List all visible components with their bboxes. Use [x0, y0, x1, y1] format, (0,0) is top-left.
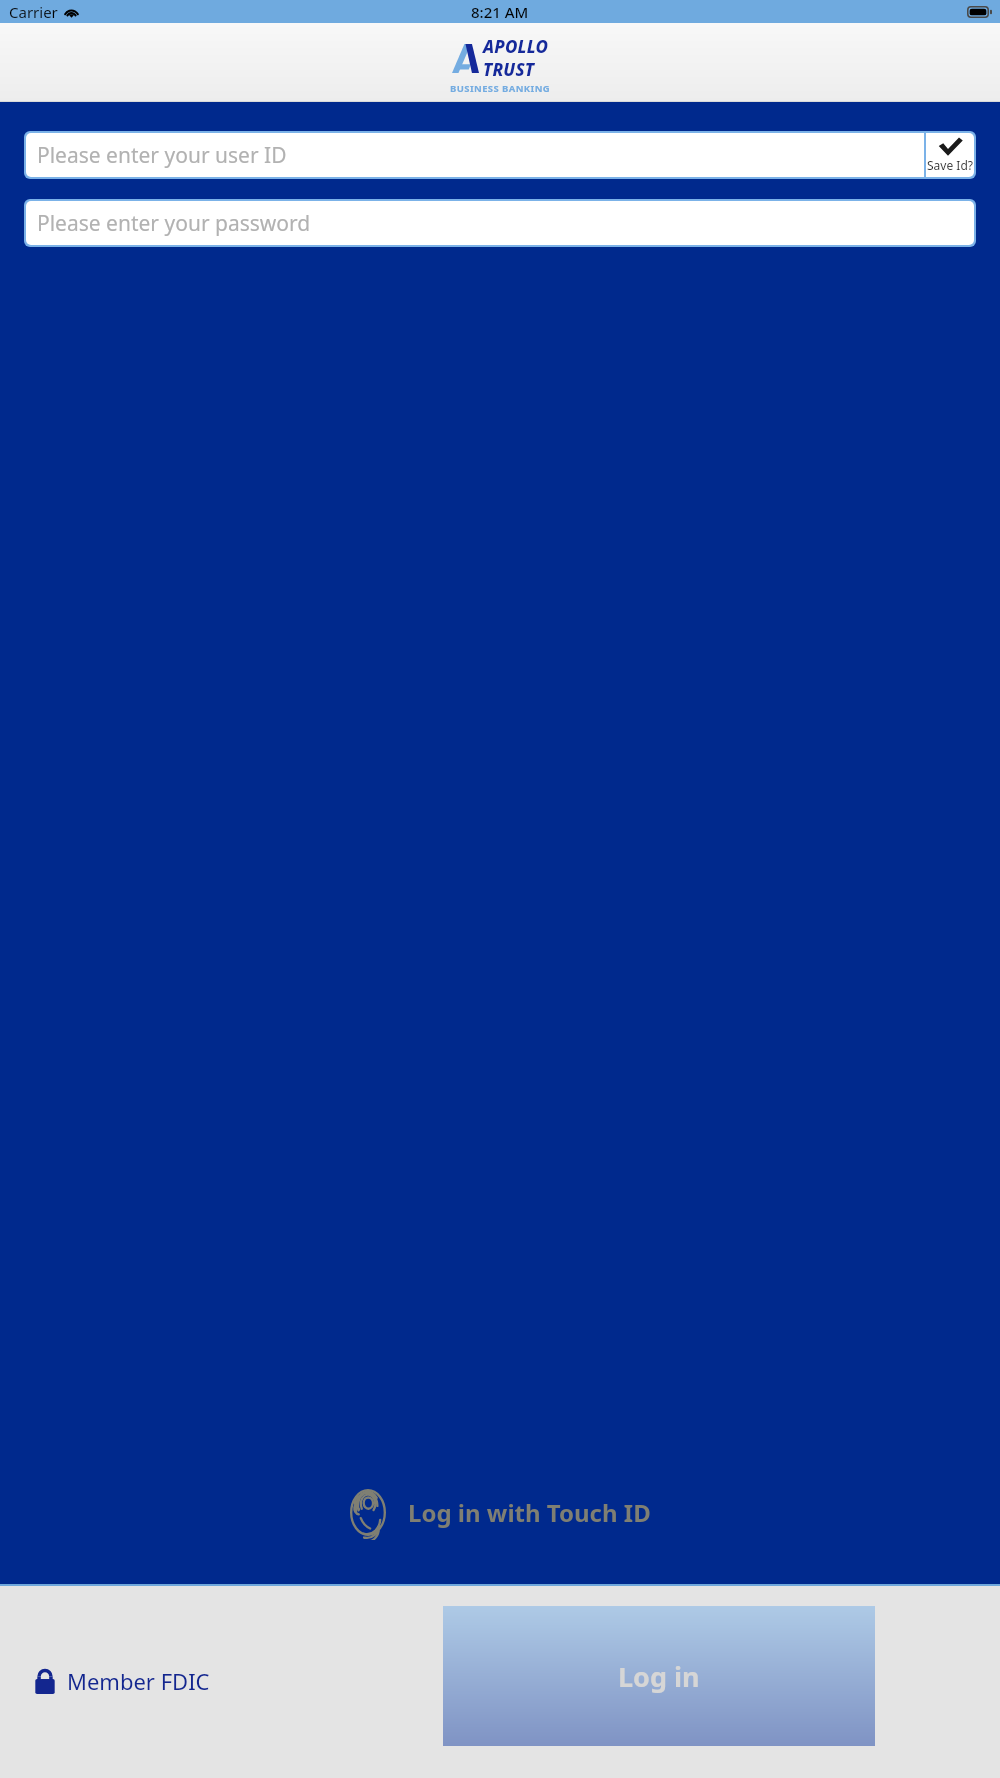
button[interactable]: Save Id: [924, 133, 974, 177]
button[interactable]: Member FDIC: [28, 1660, 216, 1702]
button[interactable]: Log in: [443, 1606, 875, 1746]
other: Touch ID fingerprint: [350, 1489, 386, 1536]
staticText: Log in with Touch ID: [408, 1496, 651, 1529]
button[interactable]: Please enter your user ID: [26, 133, 924, 177]
staticText: APOLLO: [483, 35, 549, 58]
button[interactable]: Touch ID fingerprint: [344, 1485, 657, 1540]
staticText: Carrier: [9, 2, 58, 22]
staticText: Please enter your user ID: [37, 141, 287, 170]
staticText: Save Id?: [927, 157, 973, 173]
staticText: Member FDIC: [67, 1666, 210, 1696]
staticText: 8:21 AM: [471, 2, 529, 22]
staticText: Please enter your password: [37, 209, 311, 238]
button[interactable]: Please enter your password: [26, 201, 974, 245]
other: Save Id: [938, 137, 963, 156]
staticText: BUSINESS BANKING: [450, 82, 551, 95]
staticText: TRUST: [483, 58, 535, 81]
staticText: Log in: [618, 1658, 700, 1695]
